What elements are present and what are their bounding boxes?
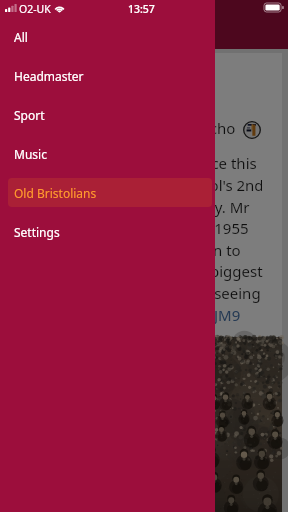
staticText: Settings [14, 224, 60, 240]
staticText: Music [14, 146, 47, 162]
staticText: Headmaster [14, 68, 84, 84]
staticText: site on Saturday 24 July. Mr [59, 197, 250, 217]
staticText: benefactors, looks forward to seeing [3, 283, 261, 303]
button[interactable]: Headmaster [8, 61, 212, 90]
staticText: Ron Jones, who left BGS in 1955 [26, 218, 249, 238]
staticText: Old Bristolians [14, 185, 97, 201]
staticText: News from Bristol Grammar School [0, 118, 236, 138]
staticText: 13:57 [128, 2, 155, 16]
button[interactable]: Music [8, 139, 212, 168]
button[interactable]: Sport [8, 100, 212, 129]
staticText: year's Speech Day at the School's 2nd [0, 175, 262, 195]
staticText: you all there. #BGSJM9 [80, 305, 241, 325]
staticText: Sport [14, 107, 45, 123]
staticText: and who later went on to [64, 240, 241, 260]
staticText: become one of the city's biggest [35, 261, 263, 281]
staticText: All [14, 29, 28, 45]
button[interactable]: Old Bristolians [8, 178, 212, 207]
button[interactable]: Settings [8, 217, 212, 246]
button[interactable]: All [8, 22, 212, 51]
staticText: We are pleased to announce this [27, 153, 257, 173]
staticText: O2-UK [19, 2, 51, 16]
